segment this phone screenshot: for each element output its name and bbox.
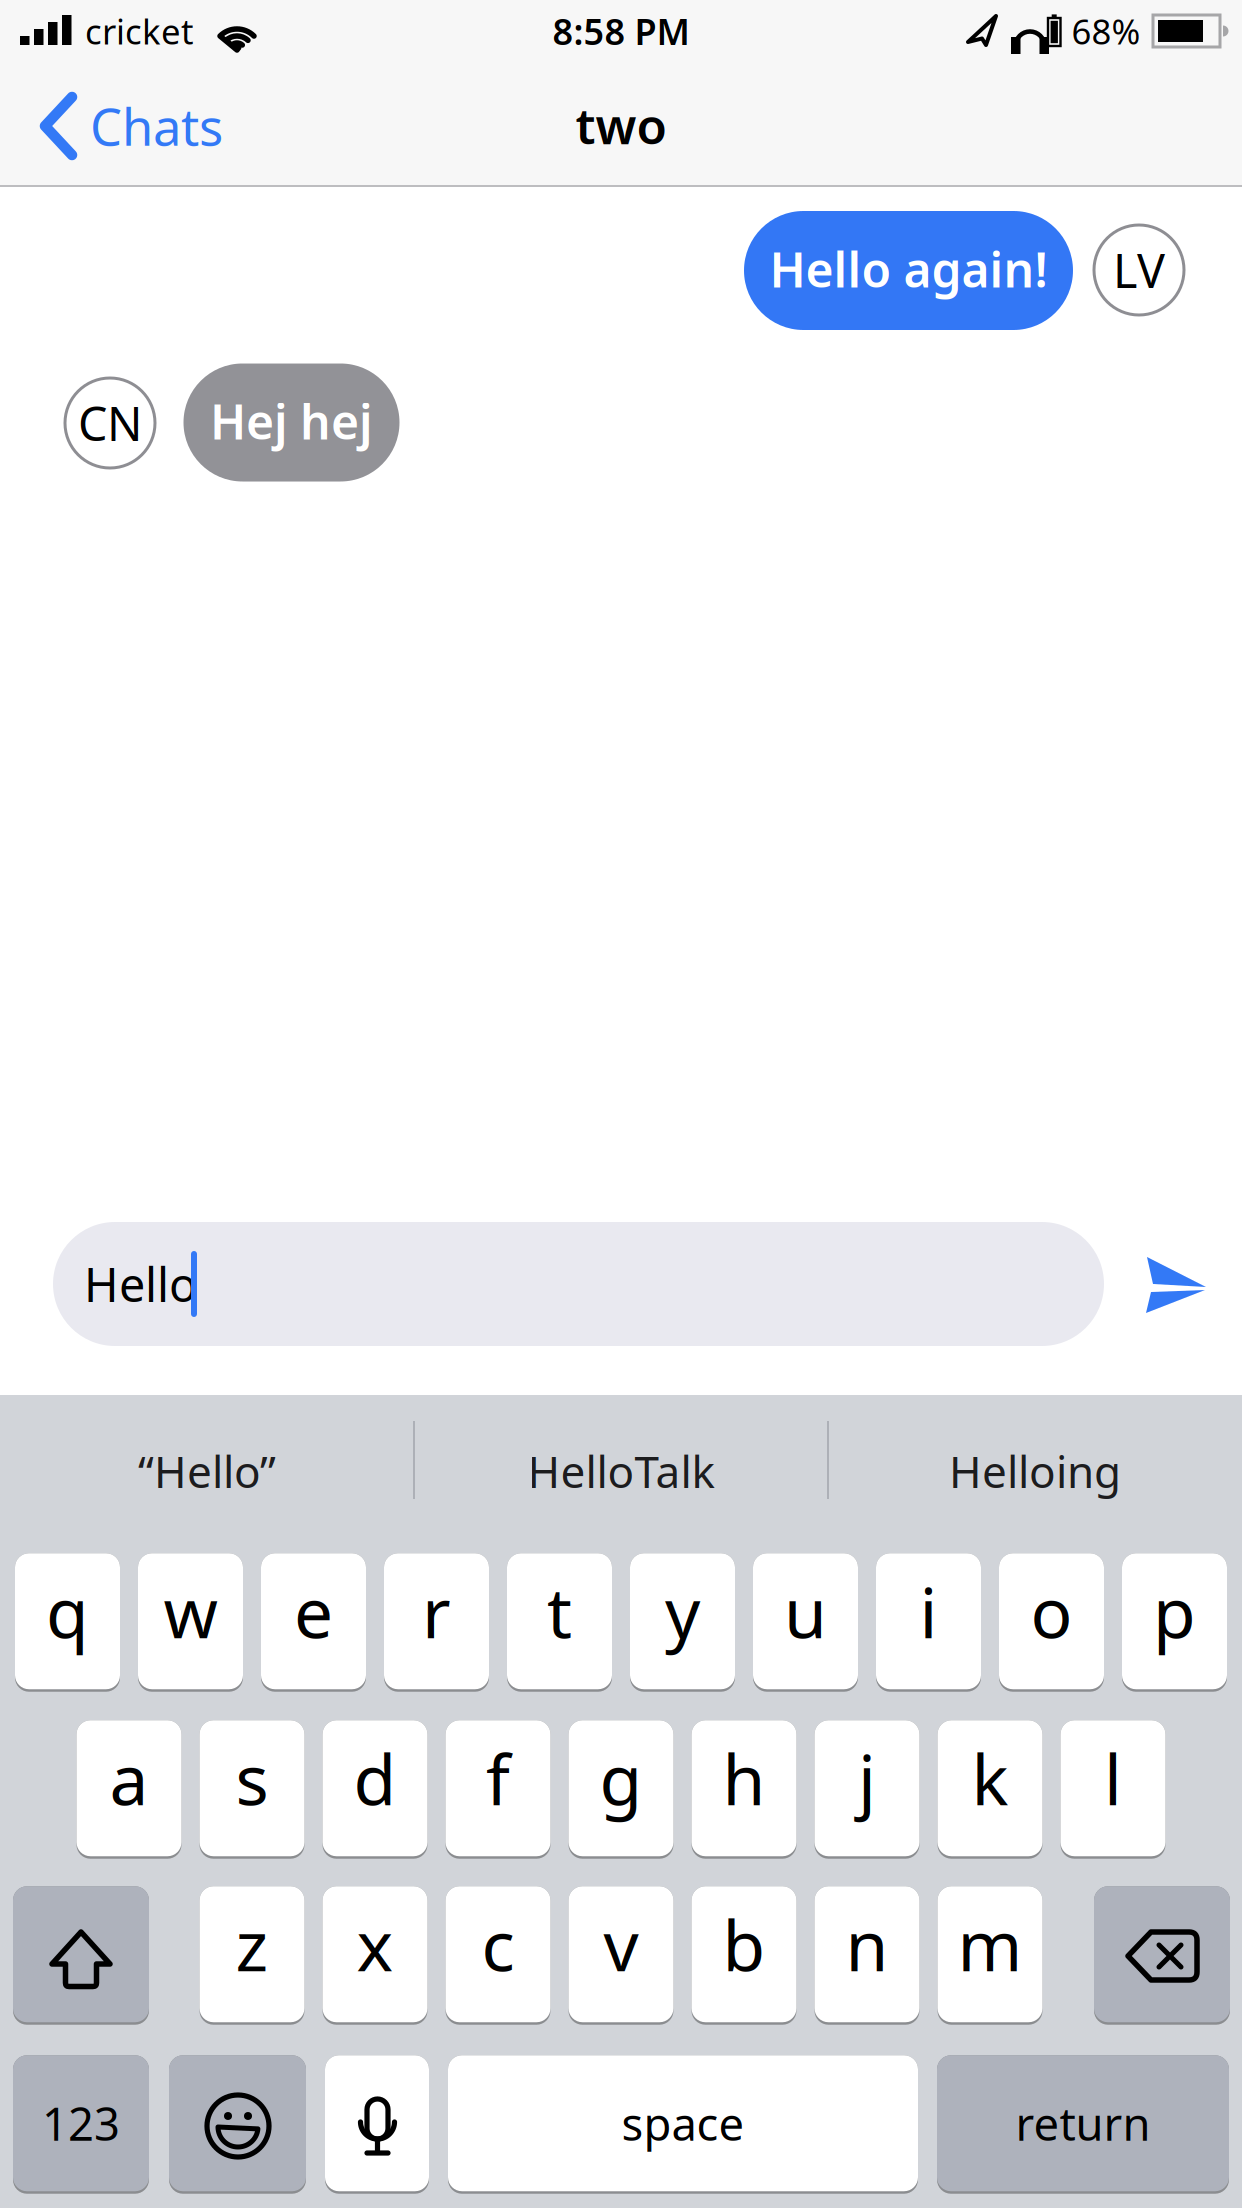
button[interactable]: s: [199, 1720, 304, 1859]
button[interactable]: k: [937, 1720, 1042, 1859]
staticText: g: [599, 1732, 642, 1824]
staticText: s: [235, 1732, 268, 1824]
staticText: Hello: [84, 1253, 197, 1315]
staticText: d: [353, 1732, 396, 1824]
staticText: w: [163, 1565, 217, 1657]
button[interactable]: g: [568, 1720, 673, 1859]
button[interactable]: j: [814, 1720, 919, 1859]
button[interactable]: n: [814, 1886, 919, 2025]
staticText: a: [109, 1732, 148, 1824]
button[interactable]: l: [1060, 1720, 1165, 1859]
staticText: 68%: [1071, 8, 1140, 54]
staticText: x: [356, 1898, 393, 1990]
staticText: f: [486, 1732, 510, 1824]
staticText: Chats: [90, 92, 223, 160]
staticText: m: [957, 1898, 1022, 1990]
staticText: l: [1104, 1732, 1122, 1824]
staticText: t: [547, 1565, 572, 1657]
button[interactable]: Emoji: [169, 2055, 306, 2194]
staticText: cricket: [85, 8, 194, 54]
button[interactable]: w: [138, 1553, 243, 1692]
staticText: 123: [42, 2093, 120, 2153]
button[interactable]: z: [199, 1886, 304, 2025]
staticText: p: [1153, 1565, 1196, 1657]
button[interactable]: Delete: [1094, 1886, 1230, 2025]
staticText: return: [1015, 2093, 1150, 2153]
button[interactable]: return: [937, 2055, 1229, 2194]
button[interactable]: Back to Chats: [0, 0, 320, 132]
button[interactable]: x: [322, 1886, 427, 2025]
staticText: h: [722, 1732, 765, 1824]
staticText: e: [294, 1565, 333, 1657]
button[interactable]: HelloTalk: [0, 0, 412, 110]
button[interactable]: u: [753, 1553, 858, 1692]
button[interactable]: q: [15, 1553, 120, 1692]
button[interactable]: i: [876, 1553, 981, 1692]
staticText: v: [603, 1898, 638, 1990]
button[interactable]: r: [384, 1553, 489, 1692]
staticText: r: [422, 1565, 451, 1657]
staticText: LV: [1113, 239, 1165, 301]
button[interactable]: d: [322, 1720, 427, 1859]
staticText: q: [46, 1565, 89, 1657]
staticText: HelloTalk: [527, 1442, 714, 1500]
button[interactable]: space: [448, 2055, 918, 2194]
button[interactable]: c: [445, 1886, 550, 2025]
staticText: “Hello”: [138, 1442, 276, 1500]
staticText: n: [845, 1898, 888, 1990]
staticText: Helloing: [949, 1442, 1121, 1500]
button[interactable]: 123: [13, 2055, 149, 2194]
button[interactable]: v: [568, 1886, 673, 2025]
button[interactable]: m: [937, 1886, 1042, 2025]
button[interactable]: e: [261, 1553, 366, 1692]
staticText: y: [665, 1565, 700, 1657]
button[interactable]: h: [691, 1720, 796, 1859]
button[interactable]: “Hello”: [0, 0, 412, 110]
staticText: z: [235, 1898, 268, 1990]
staticText: 8:58 PM: [552, 7, 689, 55]
staticText: Hello again!: [769, 237, 1047, 301]
staticText: space: [621, 2093, 744, 2153]
staticText: Hej hej: [210, 389, 373, 453]
button[interactable]: p: [1122, 1553, 1227, 1692]
button[interactable]: t: [507, 1553, 612, 1692]
staticText: k: [971, 1732, 1008, 1824]
staticText: b: [722, 1898, 765, 1990]
staticText: two: [575, 92, 666, 158]
button[interactable]: b: [691, 1886, 796, 2025]
button[interactable]: a: [76, 1720, 181, 1859]
staticText: j: [858, 1732, 876, 1824]
button[interactable]: Shift: [13, 1886, 149, 2025]
button[interactable]: Helloing: [0, 0, 412, 110]
staticText: CN: [78, 392, 142, 454]
staticText: c: [481, 1898, 514, 1990]
button[interactable]: o: [999, 1553, 1104, 1692]
staticText: o: [1030, 1565, 1072, 1657]
button[interactable]: f: [445, 1720, 550, 1859]
staticText: u: [784, 1565, 827, 1657]
button[interactable]: Dictate: [325, 2055, 429, 2194]
button[interactable]: y: [630, 1553, 735, 1692]
button[interactable]: Send: [0, 0, 1242, 2208]
staticText: i: [919, 1565, 937, 1657]
